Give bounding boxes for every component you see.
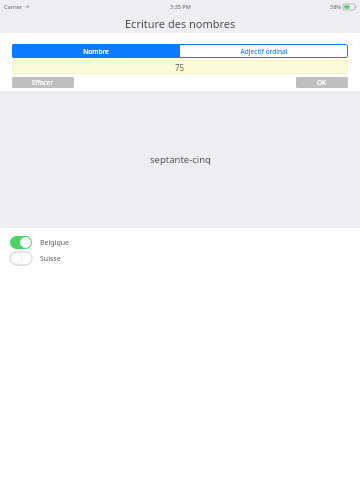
staticText: Suisse xyxy=(40,254,61,264)
staticText: 75 xyxy=(175,62,185,73)
staticText: Belgique xyxy=(40,238,69,248)
staticText: Carrier xyxy=(4,3,23,10)
staticText: Nombre xyxy=(83,47,109,56)
staticText: 58% xyxy=(330,3,341,10)
staticText: Adjectif ordinal xyxy=(240,47,288,56)
staticText: septante-cinq xyxy=(150,153,211,166)
button[interactable]: Nombre xyxy=(12,44,180,58)
staticText: 3:35 PM xyxy=(170,3,191,10)
staticText: Effacer xyxy=(32,78,54,87)
button[interactable]: 75 xyxy=(12,60,348,74)
button[interactable]: OK xyxy=(296,77,348,88)
button[interactable]: Toggle on xyxy=(10,236,32,249)
button[interactable]: Adjectif ordinal xyxy=(180,44,348,58)
staticText: Ecriture des nombres xyxy=(125,16,236,31)
button[interactable]: Toggle on xyxy=(0,236,360,249)
staticText: OK xyxy=(317,78,327,87)
button[interactable]: Toggle off xyxy=(0,252,360,265)
button[interactable]: Effacer xyxy=(12,77,74,88)
button[interactable]: Toggle off xyxy=(10,252,32,265)
